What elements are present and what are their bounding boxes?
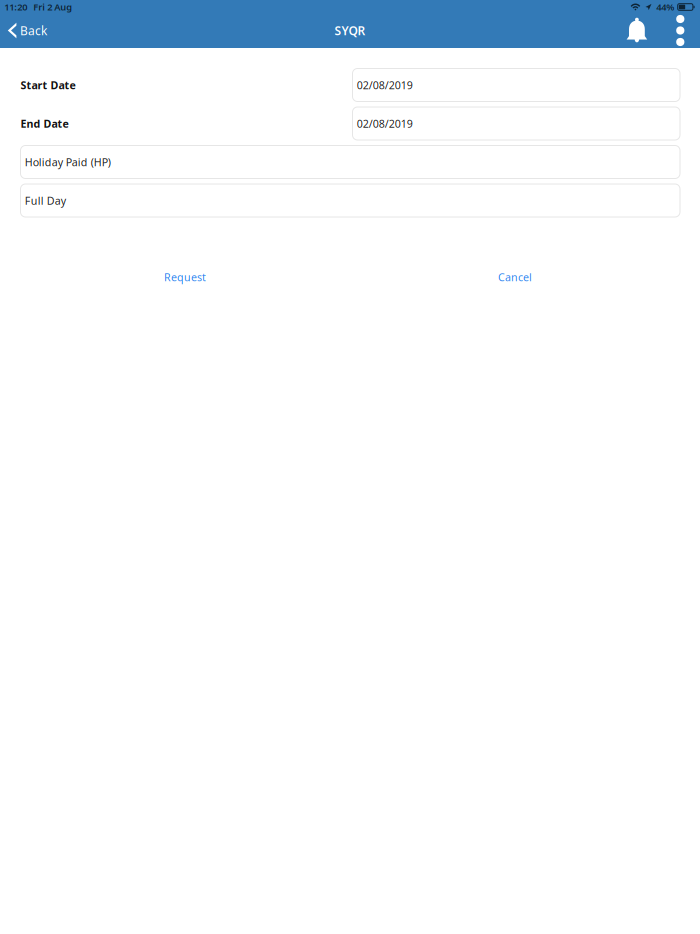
staticText: SYQR xyxy=(334,22,365,38)
button[interactable]: Cancel xyxy=(350,264,680,290)
button[interactable]: Holiday Paid (HP) xyxy=(20,145,680,178)
staticText: Holiday Paid (HP) xyxy=(25,155,111,169)
staticText: Full Day xyxy=(25,193,66,208)
staticText: End Date xyxy=(20,116,68,131)
staticText: 02/08/2019 xyxy=(357,78,413,92)
button[interactable]: Request xyxy=(20,264,350,290)
button[interactable]: More options xyxy=(655,13,700,47)
staticText: Start Date xyxy=(20,78,75,92)
staticText: 44% xyxy=(656,1,674,13)
staticText: Cancel xyxy=(498,270,532,284)
staticText: Fri 2 Aug xyxy=(33,1,72,13)
button[interactable]: Back xyxy=(0,13,55,47)
button[interactable]: 02/08/2019 xyxy=(352,107,680,140)
staticText: 11:20 xyxy=(4,1,27,13)
staticText: Back xyxy=(20,22,47,38)
staticText: 02/08/2019 xyxy=(357,116,413,131)
button[interactable]: Full Day xyxy=(20,184,680,217)
staticText: Request xyxy=(164,270,206,284)
button[interactable]: Notifications xyxy=(619,13,655,47)
button[interactable]: 02/08/2019 xyxy=(352,68,680,101)
